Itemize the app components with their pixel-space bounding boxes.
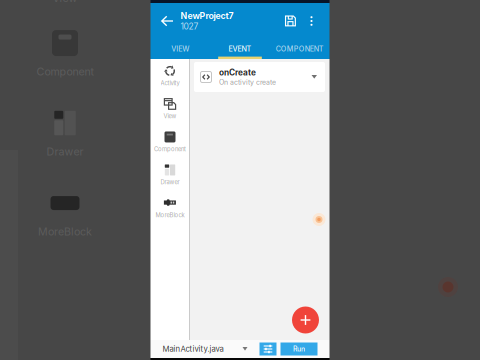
button[interactable]: More options — [301, 3, 321, 39]
staticText: NewProject7 — [180, 10, 233, 21]
button[interactable]: Back — [154, 3, 180, 39]
button[interactable]: Component — [150, 127, 189, 156]
staticText: Drawer — [46, 145, 83, 158]
staticText: MoreBlock — [38, 225, 92, 238]
button[interactable]: onCreate — [194, 62, 325, 92]
staticText: EVENT — [228, 45, 251, 53]
staticText: Drawer — [160, 178, 179, 186]
staticText: COMPONENT — [276, 45, 324, 53]
button[interactable]: COMPONENT — [270, 39, 329, 59]
staticText: On activity create — [219, 78, 276, 86]
button[interactable]: VIEW — [150, 39, 210, 59]
button[interactable]: Add event — [290, 305, 320, 335]
button[interactable]: Activity — [150, 61, 189, 90]
staticText: View — [163, 112, 176, 120]
button[interactable]: Project settings — [259, 342, 276, 355]
staticText: MainActivity.java — [162, 344, 223, 354]
staticText: MoreBlock — [155, 211, 184, 219]
button[interactable]: EVENT — [210, 39, 270, 59]
staticText: VIEW — [171, 45, 189, 53]
staticText: Component — [36, 65, 93, 78]
button[interactable]: Drawer — [150, 160, 189, 189]
staticText: Component — [154, 145, 186, 153]
staticText: Activity — [160, 79, 179, 87]
button[interactable]: Save project — [279, 3, 301, 39]
button[interactable]: MainActivity.java — [156, 340, 251, 358]
button[interactable]: MoreBlock — [150, 193, 189, 222]
staticText: View — [52, 0, 77, 4]
staticText: Run — [293, 345, 305, 353]
button[interactable]: Run — [280, 342, 317, 355]
staticText: onCreate — [219, 68, 256, 78]
button[interactable]: View — [150, 94, 189, 123]
staticText: 1027 — [180, 21, 198, 31]
